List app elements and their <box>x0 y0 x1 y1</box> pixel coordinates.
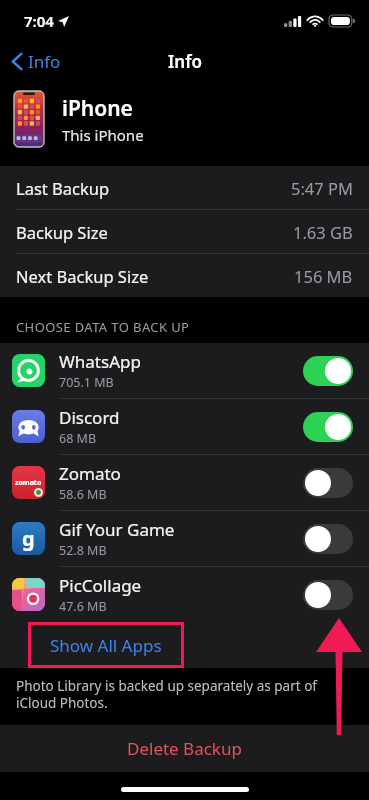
button[interactable]: Next Backup Size <box>0 254 369 297</box>
button[interactable]: g <box>0 511 369 566</box>
button[interactable]: Info <box>8 46 65 77</box>
staticText: Discord <box>59 406 120 429</box>
button[interactable]: iPhone <box>0 80 369 158</box>
button[interactable]: Discord <box>0 399 369 454</box>
button[interactable]: Delete Backup <box>0 725 369 772</box>
staticText: Show All Apps <box>50 634 162 657</box>
button[interactable]: Off <box>303 524 353 554</box>
button[interactable]: PicCollage <box>0 567 369 622</box>
button[interactable]: Off <box>303 468 353 498</box>
staticText: 705.1 MB <box>59 374 114 391</box>
staticText: Info <box>168 50 202 73</box>
button[interactable]: Last Backup <box>0 166 369 209</box>
button[interactable]: On <box>303 356 353 386</box>
staticText: PicCollage <box>59 574 142 597</box>
button[interactable]: Off <box>303 580 353 610</box>
staticText: 47.6 MB <box>59 598 107 615</box>
staticText: 58.6 MB <box>59 486 107 503</box>
staticText: Next Backup Size <box>16 265 149 287</box>
staticText: 52.8 MB <box>59 542 107 559</box>
staticText: 5:47 PM <box>291 177 353 199</box>
button[interactable]: Show All Apps <box>28 622 184 668</box>
staticText: Last Backup <box>16 177 110 199</box>
staticText: Backup Size <box>16 221 108 243</box>
staticText: Gif Your Game <box>59 518 175 541</box>
staticText: 68 MB <box>59 430 97 447</box>
staticText: iPhone <box>62 94 133 123</box>
button[interactable]: zomato <box>0 455 369 510</box>
staticText: WhatsApp <box>59 350 141 373</box>
staticText: CHOOSE DATA TO BACK UP <box>16 318 190 336</box>
staticText: 1.63 GB <box>293 221 353 243</box>
staticText: 7:04 <box>24 11 54 31</box>
staticText: Zomato <box>59 462 121 485</box>
staticText: This iPhone <box>62 125 144 145</box>
staticText: zomato <box>15 478 42 488</box>
button[interactable]: WhatsApp <box>0 343 369 398</box>
button[interactable]: Backup Size <box>0 210 369 253</box>
staticText: Info <box>28 50 61 73</box>
staticText: Delete Backup <box>127 737 242 760</box>
staticText: g <box>22 525 35 552</box>
button[interactable]: On <box>303 412 353 442</box>
staticText: 156 MB <box>294 265 353 287</box>
staticText: Photo Library is backed up separately as… <box>16 677 329 712</box>
